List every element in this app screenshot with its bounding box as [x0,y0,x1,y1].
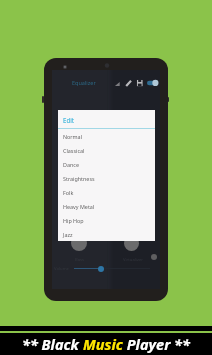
button[interactable]: Heavy Metal [58,199,155,213]
staticText: Classical [63,147,85,154]
button[interactable]: Jazz [58,227,155,241]
button[interactable]: Straightness [58,171,155,185]
staticText: Equalizer [72,79,96,86]
button[interactable]: Normal [58,129,155,143]
staticText: ** Black [22,334,83,354]
button[interactable]: Hip Hop [58,213,155,227]
staticText: Normal [63,133,83,140]
staticText: Virtualizer [123,257,143,263]
staticText: Music [83,334,123,354]
button[interactable]: Edit preset [123,78,134,89]
button[interactable]: Folk [58,185,155,199]
staticText: Player ** [123,334,190,354]
button[interactable]: More settings [151,254,157,260]
button[interactable]: Enable equalizer [146,78,159,89]
button[interactable]: Save preset [134,78,145,89]
staticText: Straightness [63,175,95,182]
button[interactable]: Dance [58,157,155,171]
staticText: Folk [63,189,74,196]
button[interactable]: Bass boost [71,235,87,251]
staticText: Bass [75,257,85,263]
staticText: Edit [63,116,75,124]
staticText: Dance [63,161,79,168]
staticText: Hip Hop [63,217,84,224]
staticText: Jazz [63,231,73,238]
button[interactable]: Virtualizer [124,236,139,251]
staticText: Heavy Metal [63,203,95,210]
button[interactable]: Classical [58,143,155,157]
button[interactable]: Reset [112,78,123,89]
